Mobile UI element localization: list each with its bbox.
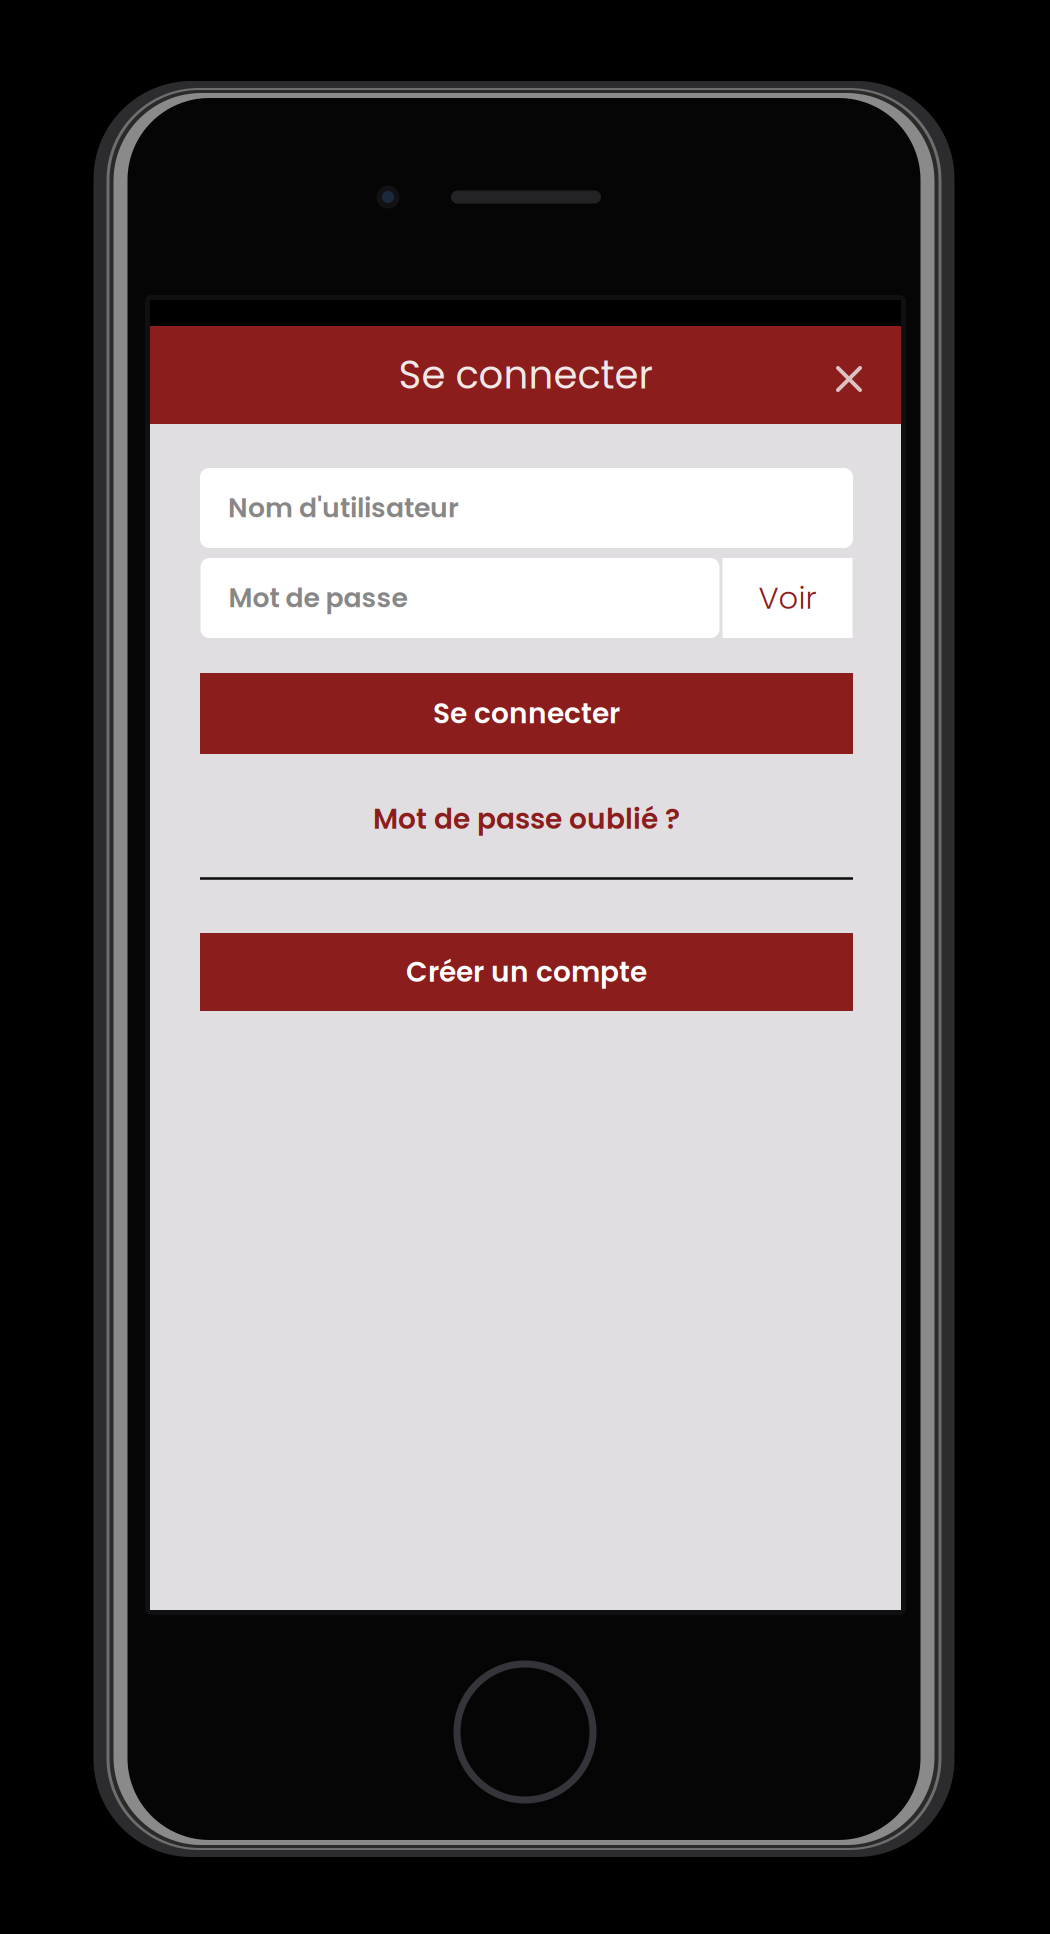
button[interactable]: Mot de passe oublié ? xyxy=(200,789,853,849)
staticText: Se connecter xyxy=(398,348,652,402)
staticText: Se connecter xyxy=(433,694,620,733)
staticText: Mot de passe xyxy=(228,579,407,617)
staticText: Voir xyxy=(758,576,816,619)
button[interactable]: Voir xyxy=(722,558,852,638)
staticText: Créer un compte xyxy=(406,952,647,992)
staticText: Nom d'utilisateur xyxy=(228,489,459,527)
button[interactable]: Se connecter xyxy=(200,673,853,754)
button[interactable]: Créer un compte xyxy=(200,933,853,1011)
button[interactable]: Fermer xyxy=(809,330,889,428)
staticText: Mot de passe oublié ? xyxy=(373,799,680,839)
